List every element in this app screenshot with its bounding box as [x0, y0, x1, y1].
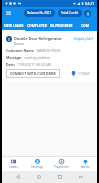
- staticText: Balance Rs.2021: [27, 11, 52, 15]
- staticText: Leads: [9, 165, 18, 169]
- button[interactable]: Menu: [4, 9, 13, 18]
- staticText: Alerts: [81, 165, 90, 169]
- staticText: 1: [8, 37, 10, 42]
- staticText: IN-PROGRESS: [50, 23, 73, 28]
- staticText: 17/03/2017 08:32 AM: [17, 62, 51, 67]
- staticText: Message:: [6, 55, 22, 60]
- staticText: Settings: [31, 165, 44, 169]
- other: Home: [37, 175, 41, 179]
- button[interactable]: Total Credit: [58, 9, 82, 17]
- staticText: Total Credit: [61, 11, 79, 15]
- staticText: 04:21: [85, 1, 95, 6]
- button[interactable]: Balance Rs.2021: [24, 9, 55, 17]
- other: Back: [16, 175, 20, 179]
- button[interactable]: Profile: [84, 10, 91, 17]
- button[interactable]: Alerts: [73, 156, 97, 171]
- button[interactable]: COM: [73, 19, 97, 31]
- button[interactable]: Leads: [2, 156, 25, 171]
- staticText: Enquiry Id:(): [74, 36, 94, 41]
- staticText: COM: [81, 23, 89, 28]
- staticText: Payments: [54, 165, 69, 169]
- staticText: 110065: [78, 71, 90, 76]
- button[interactable]: NEW LEADS: [2, 19, 25, 31]
- button[interactable]: IN-PROGRESS: [49, 19, 73, 31]
- other: Location: [71, 71, 76, 76]
- staticText: COMPLETED: [27, 23, 48, 28]
- button[interactable]: COMPLETED: [25, 19, 49, 31]
- button[interactable]: Payments: [49, 156, 73, 171]
- staticText: Date:: [6, 62, 15, 67]
- staticText: Repair: [14, 41, 25, 46]
- button[interactable]: 1: [3, 33, 96, 81]
- staticText: RAMESH POSH: [37, 48, 61, 53]
- button[interactable]: CONNECT WITH CUSTOMER: [6, 69, 60, 78]
- staticText: cooling problem: [24, 55, 51, 60]
- staticText: NEW LEADS: [4, 23, 24, 28]
- button[interactable]: Settings: [25, 156, 49, 171]
- staticText: Double Door Refrigerator: [14, 36, 62, 41]
- staticText: CONNECT WITH CUSTOMER: [10, 71, 56, 76]
- other: Screenshot: [79, 175, 83, 179]
- staticText: Customer Name:: [6, 48, 35, 53]
- other: Recents: [58, 175, 62, 179]
